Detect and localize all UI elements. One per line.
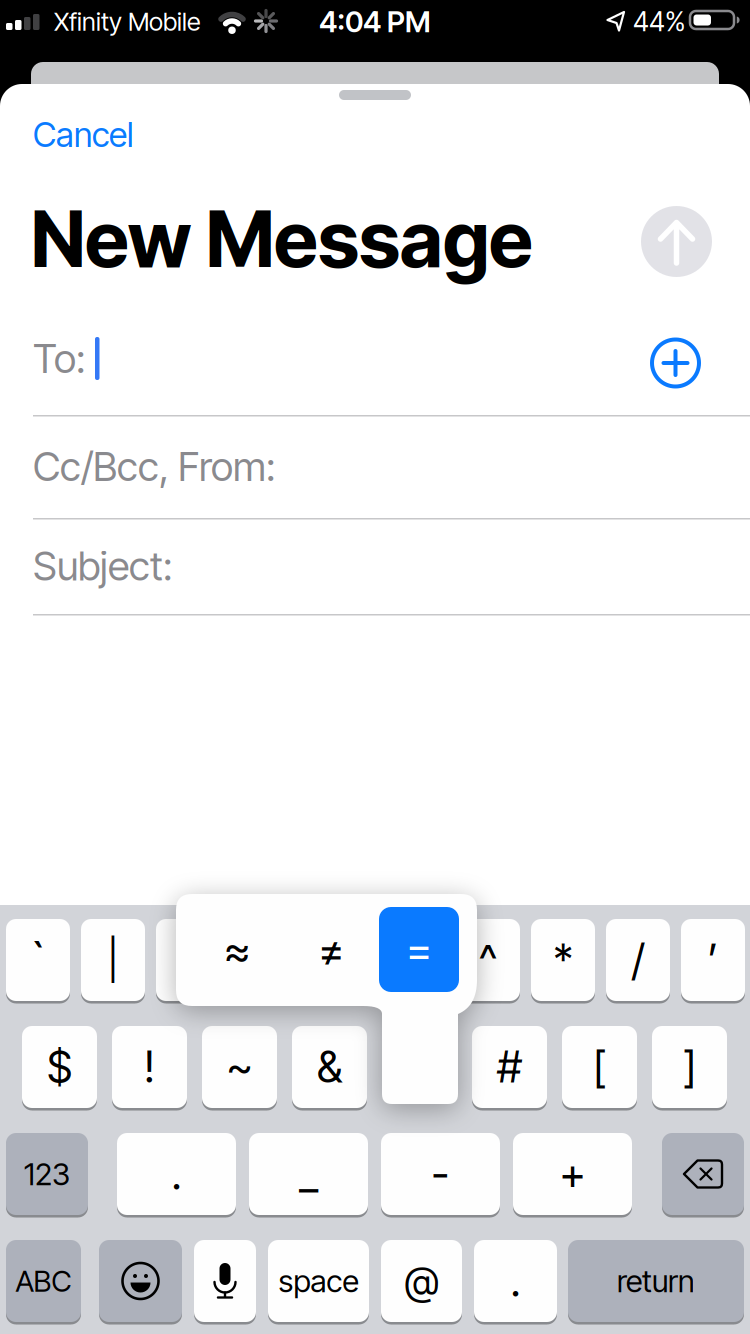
- button[interactable]: /: [606, 919, 670, 1001]
- button[interactable]: =: [379, 907, 459, 992]
- staticText: Cc/Bcc, From:: [33, 442, 275, 491]
- staticText: -: [431, 1148, 449, 1200]
- staticText: `: [28, 931, 47, 989]
- staticText: New Message: [31, 192, 533, 286]
- staticText: _: [300, 1148, 317, 1200]
- staticText: ≠: [318, 924, 344, 976]
- staticText: ]: [683, 1041, 696, 1093]
- button[interactable]: Delete: [662, 1133, 744, 1215]
- staticText: 4:04 PM: [319, 4, 431, 39]
- staticText: |: [107, 937, 118, 983]
- button[interactable]: +: [513, 1133, 632, 1215]
- staticText: [: [593, 1041, 606, 1093]
- button[interactable]: Dictate: [194, 1240, 256, 1322]
- staticText: 123: [24, 1155, 70, 1192]
- staticText: !: [144, 1041, 155, 1093]
- button[interactable]: Emoji: [99, 1240, 182, 1322]
- button[interactable]: ~: [202, 1026, 277, 1108]
- staticText: To:: [33, 334, 85, 383]
- button[interactable]: &: [292, 1026, 367, 1108]
- button[interactable]: ’: [681, 919, 745, 1001]
- button[interactable]: -: [381, 1133, 500, 1215]
- staticText: ^: [479, 934, 497, 986]
- staticText: 44%: [633, 5, 685, 38]
- staticText: space: [278, 1262, 358, 1299]
- staticText: =: [406, 924, 432, 975]
- staticText: ≈: [224, 924, 250, 976]
- staticText: *: [553, 934, 572, 986]
- staticText: @: [404, 1258, 438, 1304]
- button[interactable]: [156, 919, 220, 1001]
- staticText: ’: [707, 934, 718, 986]
- staticText: return: [617, 1262, 695, 1299]
- staticText: .: [510, 1255, 520, 1307]
- staticText: /: [631, 934, 644, 986]
- button[interactable]: .: [474, 1240, 557, 1322]
- staticText: .: [171, 1148, 181, 1200]
- button[interactable]: Subject:: [33, 518, 750, 614]
- button[interactable]: Cc/Bcc, From:: [33, 415, 750, 518]
- staticText: Subject:: [33, 542, 172, 590]
- button[interactable]: $: [22, 1026, 97, 1108]
- staticText: Cancel: [33, 114, 133, 155]
- button[interactable]: Add Contact: [652, 339, 699, 386]
- button[interactable]: ^: [456, 919, 520, 1001]
- button[interactable]: ]: [652, 1026, 727, 1108]
- button[interactable]: space: [268, 1240, 369, 1322]
- button[interactable]: [231, 919, 295, 1001]
- button[interactable]: [: [562, 1026, 637, 1108]
- staticText: ABC: [15, 1263, 71, 1299]
- button[interactable]: *: [531, 919, 595, 1001]
- button[interactable]: `: [6, 919, 70, 1001]
- button[interactable]: Cancel: [23, 108, 143, 161]
- staticText: &: [317, 1041, 342, 1093]
- button[interactable]: [381, 919, 445, 1001]
- staticText: Xfinity Mobile: [54, 6, 201, 37]
- button[interactable]: @: [381, 1240, 462, 1322]
- button[interactable]: _: [249, 1133, 368, 1215]
- button[interactable]: 123: [6, 1133, 88, 1215]
- staticText: $: [47, 1041, 72, 1093]
- button[interactable]: !: [112, 1026, 187, 1108]
- button[interactable]: ABC: [6, 1240, 81, 1322]
- staticText: +: [559, 1148, 585, 1200]
- button[interactable]: #: [472, 1026, 547, 1108]
- button[interactable]: [306, 919, 370, 1001]
- staticText: ~: [226, 1041, 252, 1093]
- button[interactable]: return: [568, 1240, 744, 1322]
- button[interactable]: To:: [33, 315, 633, 401]
- staticText: #: [497, 1041, 522, 1093]
- button[interactable]: Send: [641, 206, 712, 277]
- button[interactable]: |: [81, 919, 145, 1001]
- button[interactable]: .: [117, 1133, 236, 1215]
